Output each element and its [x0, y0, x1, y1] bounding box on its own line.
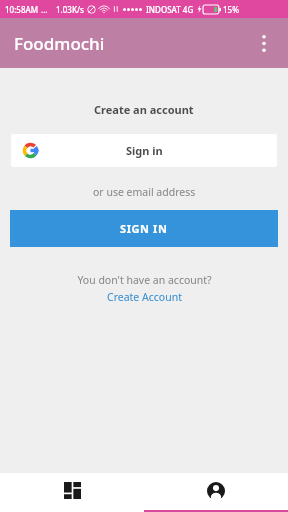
- staticText: 15%: [223, 4, 239, 15]
- button[interactable]: Account: [144, 473, 288, 512]
- button[interactable]: Create Account: [107, 290, 182, 304]
- staticText: 1.03K/s: [56, 4, 84, 15]
- staticText: 10:58AM: [5, 4, 39, 15]
- staticText: Create Account: [107, 290, 182, 304]
- staticText: Sign in: [126, 143, 163, 158]
- staticText: Create an account: [94, 102, 194, 117]
- staticText: SIGN IN: [120, 221, 168, 236]
- staticText: or use email address: [93, 185, 196, 199]
- button[interactable]: Sign in: [11, 134, 277, 167]
- staticText: You don't have an account?: [77, 273, 212, 287]
- staticText: INDOSAT 4G: [146, 4, 194, 15]
- button[interactable]: SIGN IN: [10, 210, 278, 247]
- button[interactable]: More options: [246, 25, 282, 61]
- staticText: Foodmochi: [14, 32, 105, 55]
- button[interactable]: Dashboard: [0, 473, 144, 512]
- staticText: ...: [41, 4, 48, 15]
